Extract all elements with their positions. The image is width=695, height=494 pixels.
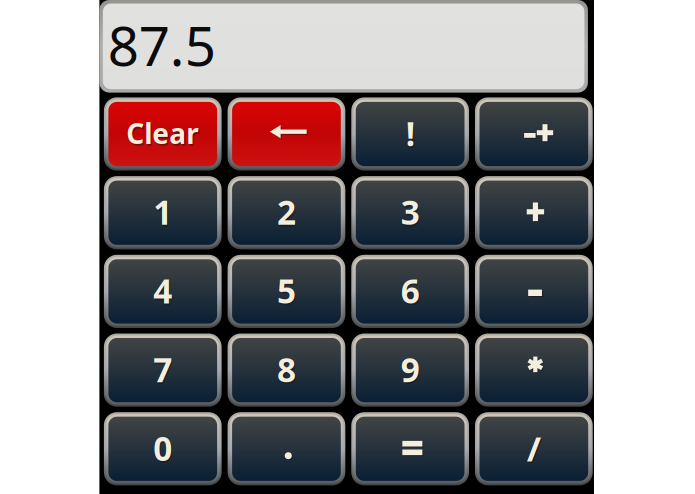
staticText: 9 <box>402 349 421 393</box>
button[interactable]: 4 <box>104 255 222 328</box>
staticText: 1 <box>154 192 173 236</box>
staticText: 0 <box>154 428 173 472</box>
staticText: 3 <box>401 190 420 234</box>
button[interactable]: 1 <box>104 176 222 249</box>
button[interactable]: Backspace <box>228 97 345 171</box>
staticText: 4 <box>153 268 172 313</box>
staticText: 8 <box>278 349 297 393</box>
staticText: / <box>528 427 542 473</box>
staticText: 8 <box>277 347 296 391</box>
staticText: 7 <box>153 347 172 391</box>
staticText: 2 <box>278 192 297 236</box>
button[interactable]: 2 <box>228 176 345 249</box>
staticText: 7 <box>154 349 173 393</box>
button[interactable]: 6 <box>351 255 469 328</box>
button[interactable]: 5 <box>228 255 345 328</box>
button[interactable]: 9 <box>351 333 469 407</box>
staticText: ! <box>406 111 415 155</box>
staticText: 5 <box>278 270 297 315</box>
button[interactable]: 7 <box>104 333 222 407</box>
staticText: 6 <box>402 270 421 315</box>
staticText: Clear <box>126 115 199 152</box>
button[interactable]: Change sign <box>475 97 593 171</box>
staticText: 9 <box>401 347 420 391</box>
button[interactable]: Decimal point <box>228 412 345 485</box>
staticText: 87.5 <box>108 8 216 81</box>
staticText: Clear <box>127 116 200 154</box>
staticText: 4 <box>154 270 173 315</box>
staticText: 5 <box>277 268 296 313</box>
button[interactable]: Plus <box>475 176 593 249</box>
button[interactable]: ! <box>351 97 469 171</box>
button[interactable]: Multiply <box>475 333 593 407</box>
staticText: 0 <box>153 426 172 470</box>
staticText: 3 <box>402 192 421 236</box>
button[interactable]: Minus <box>475 255 593 328</box>
button[interactable]: Equals <box>351 412 469 485</box>
button[interactable]: 8 <box>228 333 345 407</box>
staticText: 2 <box>277 190 296 234</box>
button[interactable]: 0 <box>104 412 222 485</box>
staticText: 6 <box>401 268 420 313</box>
staticText: ! <box>407 113 416 157</box>
button[interactable]: / <box>475 412 593 485</box>
button[interactable]: Clear <box>104 97 222 171</box>
staticText: / <box>527 425 541 471</box>
staticText: 1 <box>153 190 172 234</box>
button[interactable]: 3 <box>351 176 469 249</box>
